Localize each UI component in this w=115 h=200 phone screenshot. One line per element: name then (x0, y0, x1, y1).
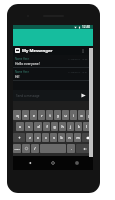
button[interactable]: c (42, 133, 49, 142)
button[interactable]: My Messenger (13, 46, 93, 55)
staticText: x (37, 135, 39, 140)
staticText: j (70, 124, 71, 129)
button[interactable]: x (34, 133, 41, 142)
button[interactable]: Home (46, 156, 60, 170)
button[interactable]: s (25, 122, 33, 131)
button[interactable]: r (38, 110, 45, 120)
staticText: Name Here (15, 70, 29, 74)
button[interactable]: w (22, 110, 29, 120)
staticText: . (71, 146, 72, 151)
staticText: b (60, 135, 63, 140)
button[interactable]: d (34, 122, 42, 131)
staticText: w (24, 113, 27, 118)
staticText: c (45, 135, 47, 140)
button[interactable]: z (26, 133, 33, 142)
button[interactable]: e (30, 110, 37, 120)
staticText: / (34, 146, 36, 151)
button[interactable]: More options (79, 47, 87, 55)
button[interactable]: o (78, 110, 85, 120)
staticText: 11/06/2017 12:31 (68, 71, 88, 74)
button[interactable]: p (86, 110, 93, 120)
staticText: Hello everyone! (15, 61, 40, 66)
button[interactable]: h (59, 122, 66, 131)
button[interactable]: u (62, 110, 69, 120)
button[interactable] (22, 144, 30, 153)
staticText: y (57, 113, 59, 118)
staticText: My Messenger (22, 48, 53, 54)
button[interactable]: g (51, 122, 58, 131)
button[interactable]: v (50, 133, 57, 142)
button[interactable]: ?123 (13, 144, 21, 153)
staticText: d (37, 124, 40, 129)
button[interactable]: f (43, 122, 50, 131)
button[interactable]: b (58, 133, 65, 142)
button[interactable]: k (75, 122, 82, 131)
button[interactable]: j (67, 122, 74, 131)
staticText: s (28, 124, 30, 129)
button[interactable]: n (66, 133, 73, 142)
staticText: 12:30 (82, 25, 91, 29)
staticText: g (53, 124, 56, 129)
staticText: o (80, 113, 83, 118)
button[interactable]: t (46, 110, 53, 120)
staticText: Name Here (15, 57, 29, 61)
staticText: Hi! (15, 74, 20, 79)
staticText: e (33, 113, 35, 118)
staticText: z (29, 135, 31, 140)
button[interactable]: Send a message (16, 94, 79, 98)
button[interactable]: Back (23, 156, 37, 170)
button[interactable]: . (67, 144, 75, 153)
button[interactable]: Name Here (13, 55, 93, 67)
staticText: p (88, 113, 91, 118)
button[interactable]: Name Here (13, 68, 93, 80)
staticText: n (68, 135, 71, 140)
staticText: l (86, 124, 87, 129)
button[interactable]: / (31, 144, 39, 153)
staticText: t (49, 113, 51, 118)
button[interactable]: Send (79, 91, 88, 100)
staticText: f (46, 124, 48, 129)
button[interactable]: Recent apps (70, 156, 84, 170)
button[interactable]: m (74, 133, 81, 142)
staticText: u (64, 113, 67, 118)
staticText: ?123 (14, 147, 20, 150)
staticText: k (78, 124, 80, 129)
staticText: i (73, 113, 74, 118)
button[interactable] (13, 133, 25, 142)
button[interactable]: l (83, 122, 90, 131)
staticText: r (41, 113, 43, 118)
staticText: h (61, 124, 64, 129)
staticText: q (16, 113, 19, 118)
button[interactable]: a (16, 122, 24, 131)
button[interactable]: q (13, 110, 21, 120)
button[interactable] (82, 133, 93, 142)
button[interactable]: i (70, 110, 77, 120)
staticText: v (53, 135, 55, 140)
staticText: a (19, 124, 21, 129)
button[interactable]: y (54, 110, 61, 120)
button[interactable] (76, 144, 93, 153)
staticText: 11/06/2017 12:30 (68, 58, 88, 61)
staticText: Send a message (16, 94, 40, 98)
staticText: m (76, 135, 80, 140)
